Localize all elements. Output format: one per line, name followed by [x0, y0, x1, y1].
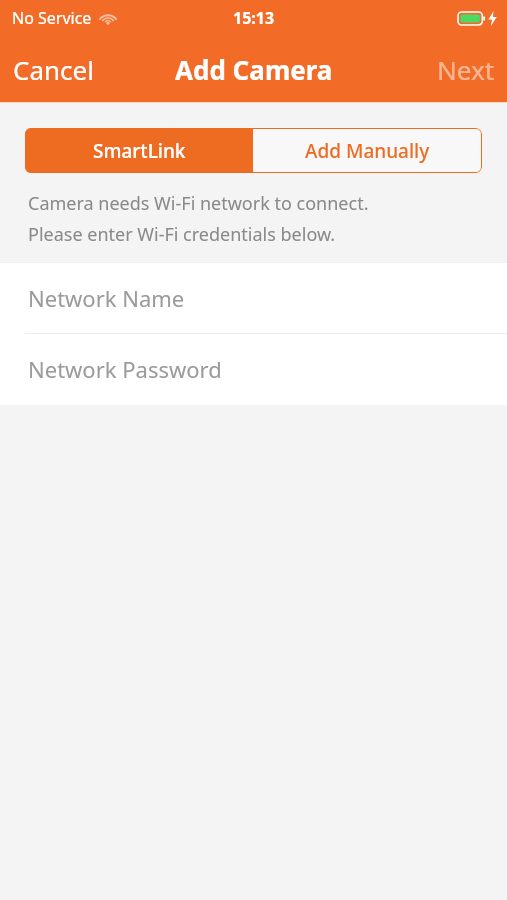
staticText: 15:13 — [233, 7, 275, 29]
button[interactable]: SmartLink — [25, 128, 253, 173]
button[interactable]: Network Password — [0, 334, 507, 404]
staticText: Add Camera — [175, 52, 333, 87]
staticText: Cancel — [13, 52, 94, 87]
staticText: Network Name — [28, 283, 185, 313]
button[interactable]: Network Name — [0, 263, 507, 333]
staticText: Camera needs Wi-Fi network to connect. — [28, 191, 369, 216]
staticText: Please enter Wi-Fi credentials below. — [28, 222, 336, 247]
staticText: Next — [437, 52, 495, 87]
button[interactable]: Add Manually — [253, 128, 482, 173]
staticText: No Service — [12, 7, 92, 29]
button[interactable]: Next — [424, 36, 507, 102]
staticText: Network Password — [28, 354, 222, 384]
button[interactable]: Cancel — [0, 36, 107, 102]
staticText: SmartLink — [93, 138, 186, 164]
staticText: Add Manually — [305, 138, 430, 164]
